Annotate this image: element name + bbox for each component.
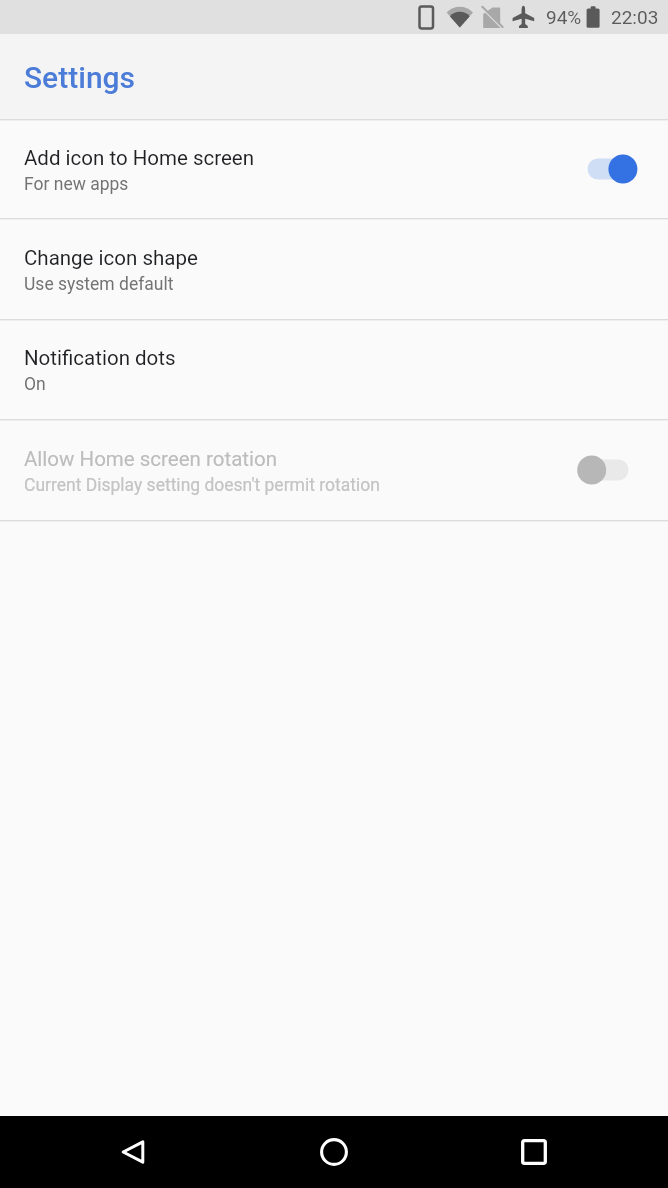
staticText: Allow Home screen rotation [24,447,277,471]
button[interactable]: Recent apps [502,1120,566,1184]
button[interactable]: Switch on [577,146,639,192]
button[interactable]: Switch off [577,447,639,493]
staticText: For new apps [24,174,129,195]
staticText: Use system default [24,274,174,295]
staticText: 94% [546,6,582,28]
staticText: Change icon shape [24,246,198,270]
staticText: Add icon to Home screen [24,146,255,170]
staticText: Current Display setting doesn't permit r… [24,475,380,496]
button[interactable]: Add icon to Home screen [0,120,668,218]
button[interactable]: Allow Home screen rotation [0,420,668,520]
button[interactable]: Change icon shape [0,219,668,319]
button[interactable]: Back [101,1120,165,1184]
staticText: Settings [24,60,136,95]
staticText: 22:03 [611,6,659,28]
staticText: On [24,374,46,395]
staticText: Notification dots [24,346,176,370]
button[interactable]: Home [302,1120,366,1184]
button[interactable]: Notification dots [0,320,668,419]
